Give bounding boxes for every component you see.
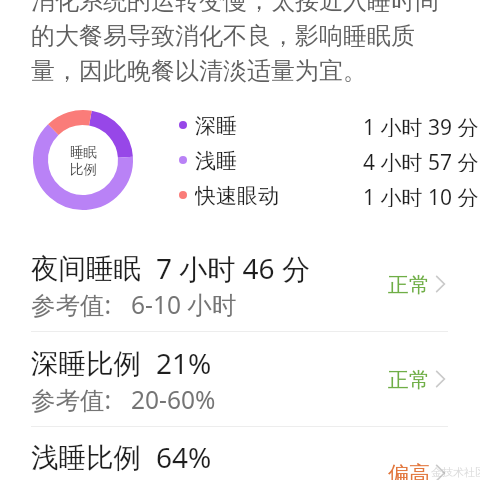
staticText: 正常 [388, 272, 430, 298]
staticText: 4 小时 57 分 [363, 148, 479, 172]
staticText: 64% [156, 438, 212, 476]
staticText: 金技术社区 [431, 465, 480, 479]
other: 查看详情 [435, 464, 446, 480]
staticText: 参考值: [31, 288, 131, 321]
staticText: 6-10 小时 [131, 288, 237, 321]
button[interactable]: 浅睡 [0, 148, 480, 172]
button[interactable]: 睡眠比例 [33, 110, 133, 210]
staticText: 浅睡比例 [31, 441, 141, 476]
staticText: 7 小时 46 分 [156, 249, 310, 287]
other: 查看详情 [435, 370, 446, 388]
staticText: 偏高 [388, 461, 430, 480]
staticText: 深睡 [195, 113, 237, 137]
staticText: 睡眠 比例 [70, 144, 97, 178]
button[interactable]: 快速眼动 [0, 183, 480, 207]
button[interactable]: 夜间睡眠 [0, 247, 480, 333]
staticText: 深睡比例 [31, 347, 141, 382]
staticText: 正常 [388, 367, 430, 393]
staticText: 参考值: [31, 383, 131, 416]
staticText: 20-60% [131, 383, 216, 416]
button[interactable]: 深睡 [0, 113, 480, 137]
button[interactable]: 深睡比例 [0, 342, 480, 428]
other: 查看详情 [435, 275, 446, 293]
staticText: 21% [156, 344, 212, 382]
button[interactable]: 浅睡比例 [0, 436, 480, 480]
staticText: 浅睡 [195, 148, 237, 172]
staticText: 夜间睡眠 [31, 252, 141, 287]
staticText: 1 小时 39 分 [363, 113, 479, 137]
staticText: 快速眼动 [195, 183, 279, 207]
staticText: 消化系统的运转变慢，太接近入睡时间 的大餐易导致消化不良，影响睡眠质 量，因此晚… [31, 0, 439, 86]
staticText: 1 小时 10 分 [363, 183, 479, 207]
